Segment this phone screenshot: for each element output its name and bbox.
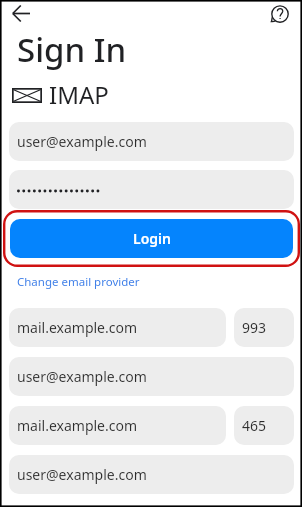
button[interactable]: user@example.com: [9, 122, 294, 161]
staticText: Change email provider: [17, 274, 140, 290]
staticText: mail.example.com: [17, 318, 138, 337]
button[interactable]: Back: [3, 0, 39, 27]
button[interactable]: [9, 170, 294, 209]
staticText: mail.example.com: [17, 416, 138, 435]
button[interactable]: Help: [266, 0, 294, 27]
button[interactable]: mail.example.com: [9, 406, 226, 445]
staticText: user@example.com: [17, 132, 147, 151]
staticText: 465: [242, 416, 267, 435]
button[interactable]: mail.example.com: [9, 308, 226, 347]
button[interactable]: 993: [234, 308, 294, 347]
staticText: user@example.com: [17, 465, 147, 484]
button[interactable]: user@example.com: [9, 357, 294, 396]
button[interactable]: Login: [10, 219, 293, 258]
button[interactable]: Change email provider: [17, 272, 140, 292]
button[interactable]: 465: [234, 406, 294, 445]
button[interactable]: user@example.com: [9, 455, 294, 494]
staticText: 993: [242, 318, 267, 337]
staticText: user@example.com: [17, 367, 147, 386]
staticText: Login: [133, 229, 171, 248]
staticText: IMAP: [49, 78, 109, 111]
staticText: Sign In: [17, 27, 127, 72]
